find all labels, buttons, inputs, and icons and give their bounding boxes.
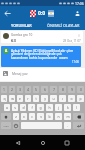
staticText: d: [22, 105, 25, 110]
button[interactable]: 5: [33, 86, 39, 93]
staticText: a: [6, 105, 8, 110]
button[interactable]: h: [46, 104, 53, 111]
button[interactable]: 6: [41, 86, 48, 93]
button[interactable]: ı: [59, 95, 66, 102]
staticText: b: [48, 114, 51, 119]
staticText: 17:06: [11, 60, 79, 64]
staticText: z: [15, 114, 17, 119]
staticText: g: [39, 105, 42, 110]
button[interactable]: w: [9, 95, 15, 102]
button[interactable]: Emoji: [13, 122, 19, 129]
staticText: p: [79, 96, 82, 101]
staticText: 4: [27, 87, 29, 92]
button[interactable]: y: [41, 95, 48, 102]
staticText: Gomba gro 10: [11, 33, 33, 37]
staticText: e: [19, 96, 21, 101]
button[interactable]: u: [50, 95, 57, 102]
staticText: Aykut Yıldırım KD Bütünsellikod alır çör…: [11, 48, 79, 60]
button[interactable]: r: [25, 95, 31, 102]
button[interactable]: YORUMLAR: [0, 20, 42, 30]
staticText: j: [58, 105, 59, 110]
staticText: 8: [62, 87, 64, 92]
button[interactable]: v: [37, 113, 44, 120]
button[interactable]: p: [77, 95, 84, 102]
staticText: k: [67, 105, 69, 110]
staticText: A: [5, 49, 8, 53]
button[interactable]: 3: [17, 86, 23, 93]
button[interactable]: A: [1, 46, 81, 67]
button[interactable]: s: [12, 104, 18, 111]
staticText: o: [70, 96, 73, 101]
button[interactable]: o: [68, 95, 75, 102]
button[interactable]: c: [29, 113, 35, 120]
button[interactable]: Gomba gro 10: [1, 31, 83, 43]
button[interactable]: n: [55, 113, 62, 120]
button[interactable]: l: [73, 104, 80, 111]
staticText: .: [67, 123, 68, 128]
staticText: 0: [80, 87, 82, 92]
button[interactable]: Enter: [73, 122, 84, 129]
staticText: t: [35, 96, 37, 101]
button[interactable]: x: [21, 113, 27, 120]
button[interactable]: 4: [25, 86, 31, 93]
button[interactable]: Recents: [60, 136, 74, 150]
button[interactable]: g: [37, 104, 44, 111]
staticText: y: [44, 96, 46, 101]
button[interactable]: z: [13, 113, 19, 120]
button[interactable]: Attach image: [2, 70, 9, 77]
button[interactable]: 2: [9, 86, 15, 93]
staticText: 2: [11, 87, 13, 92]
button[interactable]: j: [55, 104, 62, 111]
staticText: YORUMLAR: [11, 23, 32, 28]
staticText: 3: [19, 87, 21, 92]
staticText: q: [3, 96, 6, 101]
staticText: 6: [44, 87, 46, 92]
button[interactable]: Profile: [71, 7, 84, 20]
staticText: ı: [62, 96, 63, 101]
button[interactable]: e: [17, 95, 23, 102]
button[interactable]: f: [28, 104, 35, 111]
button[interactable]: 9: [68, 86, 75, 93]
staticText: 28 Oca, 11:07: [63, 39, 81, 43]
button[interactable]: 0: [77, 86, 84, 93]
button[interactable]: 8: [59, 86, 66, 93]
button[interactable]: 1: [1, 86, 7, 93]
staticText: Mesaj yaz: [12, 71, 28, 76]
staticText: m: [66, 114, 70, 119]
staticText: r: [27, 96, 29, 101]
staticText: f: [31, 105, 33, 110]
staticText: w: [11, 96, 14, 101]
button[interactable]: Backspace: [73, 113, 84, 120]
button[interactable]: 7: [50, 86, 57, 93]
staticText: ?123: [3, 124, 9, 127]
button[interactable]: k: [64, 104, 71, 111]
staticText: v: [40, 114, 42, 119]
button[interactable]: m: [64, 113, 71, 120]
button[interactable]: Home: [36, 136, 50, 150]
button[interactable]: ?123: [1, 122, 11, 129]
staticText: 1: [3, 87, 5, 92]
button[interactable]: Back: [0, 6, 14, 20]
button[interactable]: b: [46, 113, 53, 120]
staticText: 5: [35, 87, 37, 92]
staticText: u: [52, 96, 55, 101]
button[interactable]: .: [64, 122, 71, 129]
staticText: c: [31, 114, 33, 119]
button[interactable]: t: [33, 95, 39, 102]
staticText: n: [57, 114, 60, 119]
button[interactable]: ÖNEMLİ OLAYLAR: [42, 20, 85, 30]
staticText: ÖNEMLİ OLAYLAR: [47, 23, 80, 28]
button[interactable]: q: [1, 95, 7, 102]
button[interactable]: Back: [11, 136, 25, 150]
button[interactable]: a: [4, 104, 10, 111]
button[interactable]: Shift: [1, 113, 11, 120]
staticText: l: [76, 105, 77, 110]
button[interactable]: Options: [77, 33, 81, 37]
staticText: h: [48, 105, 51, 110]
staticText: 7: [53, 87, 55, 92]
staticText: 63: [11, 38, 16, 43]
staticText: s: [14, 105, 16, 110]
button[interactable]: d: [20, 104, 26, 111]
staticText: x: [23, 114, 25, 119]
